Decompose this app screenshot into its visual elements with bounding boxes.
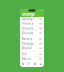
button[interactable]: Privacy — [20, 22, 44, 26]
staticText: Battery — [22, 37, 33, 41]
button[interactable]: Profile — [38, 61, 44, 67]
button[interactable]: Alerts — [32, 61, 38, 67]
button[interactable]: Search — [26, 61, 32, 67]
button[interactable]: Sounds — [20, 31, 44, 35]
staticText: Wallet — [22, 46, 32, 50]
staticText: Display — [22, 27, 34, 30]
button[interactable]: Display — [20, 26, 44, 31]
button[interactable]: About — [20, 57, 44, 61]
button[interactable]: Battery — [20, 37, 44, 41]
button[interactable]: Siri — [20, 52, 44, 56]
button[interactable]: Storage — [20, 41, 44, 46]
staticText: Settings — [22, 12, 35, 16]
staticText: Sounds — [22, 31, 34, 35]
button[interactable]: General — [20, 17, 44, 21]
staticText: About — [22, 57, 31, 61]
staticText: General — [22, 17, 34, 21]
staticText: Siri — [22, 52, 27, 56]
button[interactable]: Wallet — [20, 46, 44, 50]
staticText: Privacy — [22, 22, 34, 25]
staticText: Storage — [22, 42, 34, 45]
button[interactable]: Home — [20, 61, 26, 67]
